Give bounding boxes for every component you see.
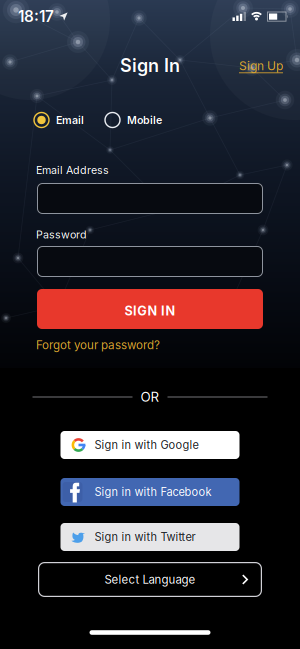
button[interactable]: Sign in with Twitter (60, 523, 239, 551)
staticText: Sign in with Facebook (94, 485, 211, 499)
button[interactable]: Mobile (105, 112, 162, 127)
button[interactable]: Email (34, 112, 84, 127)
staticText: Sign in with Twitter (94, 530, 195, 544)
staticText: Password (36, 228, 87, 241)
staticText: Sign in with Google (94, 438, 198, 452)
button[interactable]: Sign in with Facebook (60, 478, 239, 506)
button[interactable]: Select Language (38, 562, 262, 597)
button[interactable]: Sign Up (239, 59, 283, 73)
staticText: Select Language (104, 573, 195, 586)
staticText: Email (56, 113, 84, 126)
button[interactable]: SIGN IN (37, 289, 263, 329)
staticText: Mobile (127, 113, 162, 126)
staticText: Sign In (120, 55, 180, 76)
staticText: OR (140, 389, 159, 405)
staticText: Email Address (36, 163, 109, 176)
button[interactable]: Forgot your password? (36, 338, 160, 352)
staticText: 18:17 (18, 7, 54, 26)
button[interactable]: Sign in with Google (60, 431, 239, 459)
staticText: SIGN IN (125, 303, 175, 319)
staticText: Sign Up (239, 59, 283, 73)
staticText: Forgot your password? (36, 338, 160, 352)
